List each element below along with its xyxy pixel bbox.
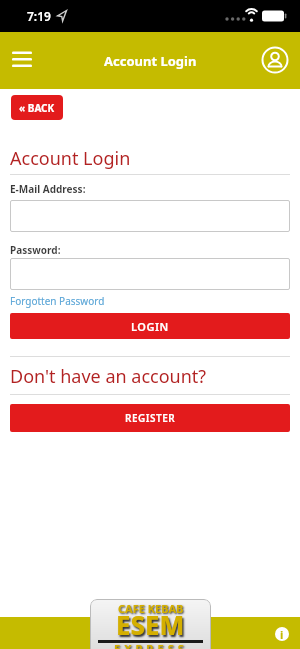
button[interactable]: CAFE KEBAB bbox=[90, 599, 211, 649]
button[interactable]: Forgotten Password bbox=[10, 294, 105, 308]
button[interactable]: LOGIN bbox=[10, 313, 290, 339]
staticText: EXPRESS bbox=[114, 641, 188, 649]
staticText: CAFE KEBAB bbox=[118, 601, 184, 616]
staticText: E-Mail Address: bbox=[10, 182, 86, 196]
staticText: Account Login bbox=[104, 52, 197, 70]
staticText: ESEM bbox=[116, 607, 185, 642]
staticText: Don't have an account? bbox=[10, 364, 207, 389]
staticText: 7:19 bbox=[27, 8, 51, 24]
button[interactable]: « BACK bbox=[11, 95, 63, 120]
button[interactable] bbox=[6, 46, 38, 76]
button[interactable] bbox=[10, 258, 290, 290]
staticText: i bbox=[280, 627, 284, 641]
button[interactable]: i bbox=[275, 627, 289, 641]
staticText: Password: bbox=[10, 243, 61, 257]
staticText: REGISTER bbox=[125, 411, 176, 425]
staticText: LOGIN bbox=[131, 319, 169, 334]
staticText: Account Login bbox=[10, 146, 131, 171]
staticText: Forgotten Password bbox=[10, 294, 105, 308]
staticText: « BACK bbox=[19, 101, 55, 115]
button[interactable]: REGISTER bbox=[10, 404, 290, 432]
button[interactable] bbox=[260, 45, 290, 75]
button[interactable] bbox=[10, 200, 290, 232]
